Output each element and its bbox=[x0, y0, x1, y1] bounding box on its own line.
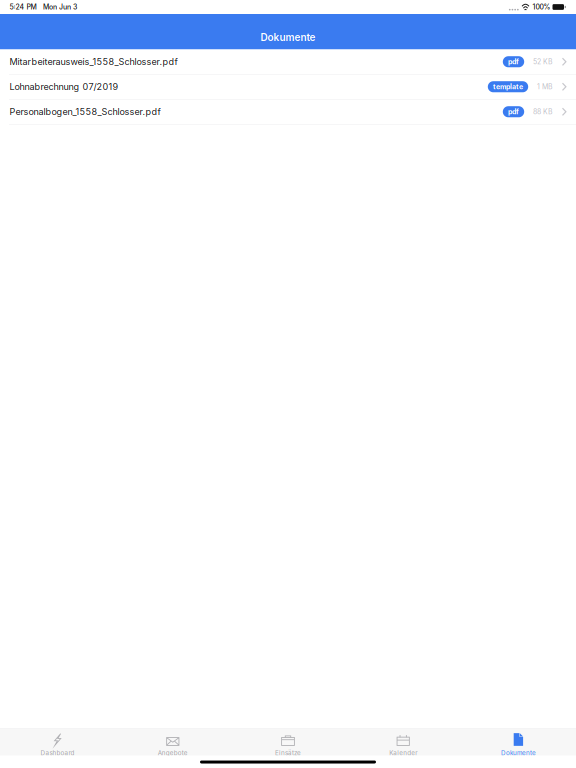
button[interactable]: Kalender bbox=[346, 728, 461, 756]
staticText: Kalender bbox=[389, 749, 417, 757]
staticText: Dokumente bbox=[260, 31, 315, 43]
staticText: Personalbogen_1558_Schlosser.pdf bbox=[9, 106, 160, 117]
button[interactable]: Lohnabrechnung 07/2019 bbox=[0, 74, 576, 99]
button[interactable]: Personalbogen_1558_Schlosser.pdf bbox=[0, 99, 576, 124]
staticText: Mitarbeiterausweis_1558_Schlosser.pdf bbox=[9, 56, 177, 67]
staticText: template bbox=[493, 83, 523, 91]
button[interactable]: Dashboard bbox=[0, 728, 115, 756]
staticText: 52 KB bbox=[533, 58, 553, 66]
button[interactable]: Mitarbeiterausweis_1558_Schlosser.pdf bbox=[0, 49, 576, 74]
button[interactable]: Dokumente bbox=[461, 728, 576, 756]
button[interactable]: Angebote bbox=[115, 728, 230, 756]
staticText: 5:24 PM bbox=[9, 3, 36, 11]
button[interactable]: Einsätze bbox=[230, 728, 346, 756]
staticText: pdf bbox=[508, 58, 519, 66]
staticText: Dashboard bbox=[41, 749, 75, 757]
staticText: pdf bbox=[508, 108, 519, 116]
staticText: 1 MB bbox=[537, 83, 553, 91]
staticText: Mon Jun 3 bbox=[43, 3, 77, 11]
staticText: Dokumente bbox=[501, 749, 536, 757]
staticText: 88 KB bbox=[533, 108, 553, 116]
staticText: 100% bbox=[532, 3, 550, 11]
staticText: Lohnabrechnung 07/2019 bbox=[9, 81, 118, 92]
staticText: Angebote bbox=[158, 749, 188, 757]
staticText: Einsätze bbox=[275, 749, 301, 757]
